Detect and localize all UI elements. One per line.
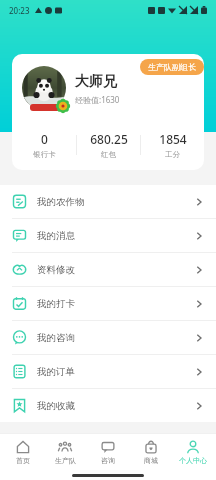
staticText: 0 <box>41 131 48 147</box>
button[interactable]: 商城 <box>131 440 171 465</box>
staticText: 生产队 <box>55 456 76 465</box>
button[interactable]: 首页 <box>3 440 43 465</box>
button[interactable]: 我的打卡 <box>0 287 216 320</box>
staticText: 商城 <box>144 456 158 465</box>
button[interactable]: 1854 <box>141 131 204 159</box>
staticText: 我的打卡 <box>37 298 75 310</box>
staticText: 680.25 <box>90 131 128 147</box>
button[interactable]: 我的订单 <box>0 355 216 388</box>
staticText: 首页 <box>16 456 30 465</box>
staticText: 我的咨询 <box>37 332 75 344</box>
button[interactable]: 0 <box>12 131 76 159</box>
staticText: 红包 <box>101 150 116 159</box>
button[interactable]: 大师兄 <box>22 66 120 112</box>
button[interactable]: 我的农作物 <box>0 185 216 218</box>
button[interactable]: 咨询 <box>88 440 128 465</box>
button[interactable]: 我的收藏 <box>0 389 216 422</box>
staticText: 我的订单 <box>37 366 75 378</box>
staticText: 资料修改 <box>37 264 75 276</box>
staticText: 生产队副组长 <box>148 62 196 72</box>
staticText: 1854 <box>159 131 187 147</box>
button[interactable]: 680.25 <box>77 131 140 159</box>
button[interactable]: 生产队副组长 <box>140 59 204 75</box>
staticText: 我的收藏 <box>37 400 75 412</box>
staticText: 咨询 <box>101 456 115 465</box>
staticText: 工分 <box>165 150 180 159</box>
staticText: 我的农作物 <box>37 196 85 208</box>
button[interactable]: 个人中心 <box>173 440 213 465</box>
staticText: 大师兄 <box>75 73 117 91</box>
staticText: 我的消息 <box>37 230 75 242</box>
button[interactable]: 生产队 <box>45 440 85 465</box>
staticText: 银行卡 <box>33 150 56 159</box>
staticText: 20:23 <box>9 5 30 16</box>
button[interactable]: 我的消息 <box>0 219 216 252</box>
button[interactable]: 我的咨询 <box>0 321 216 354</box>
staticText: 个人中心 <box>179 456 207 465</box>
button[interactable]: 资料修改 <box>0 253 216 286</box>
staticText: 经验值:1630 <box>75 94 120 105</box>
